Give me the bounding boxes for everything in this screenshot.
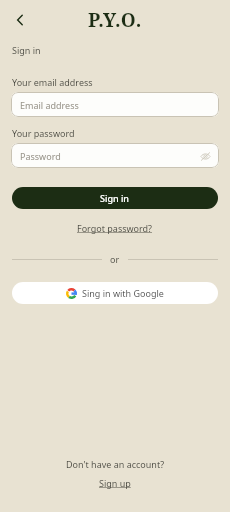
staticText: Your email address bbox=[12, 76, 93, 88]
staticText: Sign in bbox=[100, 192, 130, 204]
staticText: Sign up bbox=[99, 477, 131, 489]
staticText: Email address bbox=[20, 99, 79, 111]
button[interactable]: Email address bbox=[11, 92, 219, 117]
staticText: Sign in bbox=[12, 44, 41, 56]
button[interactable]: Back bbox=[6, 6, 34, 34]
button[interactable]: Show password bbox=[198, 149, 212, 163]
button[interactable]: Sign in bbox=[12, 187, 218, 209]
staticText: Forgot password? bbox=[77, 222, 153, 234]
button[interactable]: Password bbox=[11, 143, 219, 168]
staticText: P.Y.O. bbox=[88, 7, 142, 33]
button[interactable]: Sing in with Google bbox=[12, 282, 218, 304]
staticText: Don't have an account? bbox=[66, 458, 165, 470]
button[interactable]: Forgot password? bbox=[73, 221, 157, 235]
staticText: or bbox=[110, 253, 120, 265]
staticText: Password bbox=[20, 150, 61, 162]
staticText: Your password bbox=[12, 127, 75, 139]
staticText: Sing in with Google bbox=[82, 287, 164, 299]
button[interactable]: Sign up bbox=[93, 476, 137, 490]
